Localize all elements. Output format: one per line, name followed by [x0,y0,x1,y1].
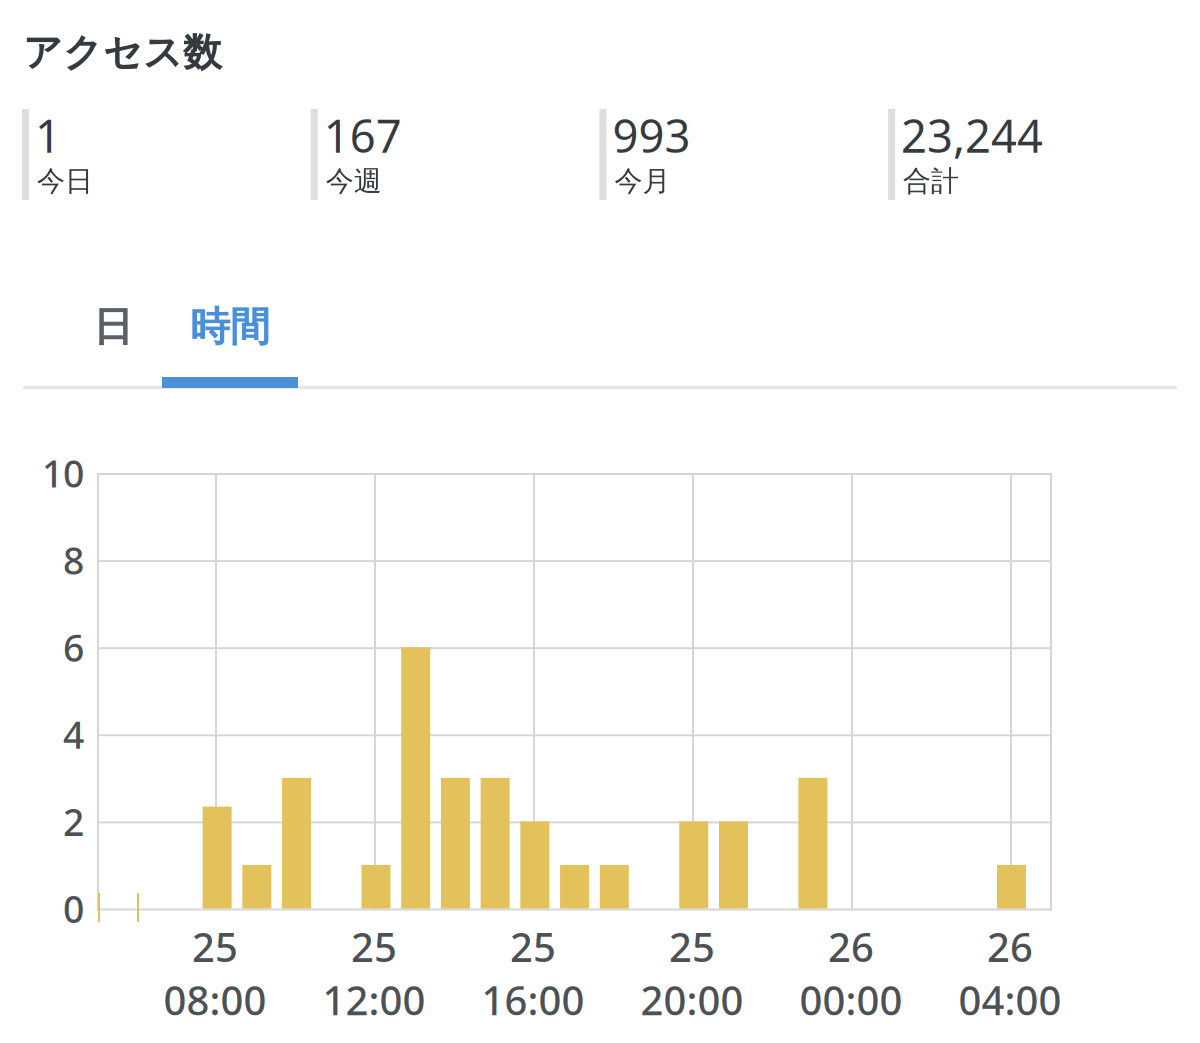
staticText: 25 [351,920,397,973]
staticText: 今月 [614,164,670,198]
staticText: 16:00 [481,973,584,1026]
staticText: 08:00 [163,973,266,1026]
staticText: 日 [93,302,133,351]
staticText: アクセス数 [23,29,222,76]
staticText: 4 [63,709,84,759]
staticText: 25 [192,920,238,973]
staticText: 20:00 [640,973,743,1026]
staticText: 2 [63,797,84,846]
staticText: 1 [35,105,61,165]
staticText: 0 [63,884,84,933]
staticText: 今週 [326,164,382,198]
staticText: 00:00 [799,973,902,1026]
button[interactable]: 日 [72,278,154,376]
staticText: 04:00 [958,973,1061,1026]
staticText: 26 [828,920,874,973]
staticText: 8 [63,535,84,585]
staticText: 合計 [903,164,959,198]
staticText: 12:00 [322,973,425,1026]
staticText: 10 [42,448,84,498]
staticText: 25 [669,920,715,973]
staticText: 時間 [190,302,270,351]
staticText: 993 [612,105,690,165]
staticText: 今日 [37,164,93,198]
staticText: 26 [987,920,1033,973]
button[interactable]: 時間 [162,278,298,376]
staticText: 23,244 [901,105,1043,165]
staticText: 25 [510,920,556,973]
staticText: 6 [63,622,84,672]
staticText: 167 [324,105,402,165]
